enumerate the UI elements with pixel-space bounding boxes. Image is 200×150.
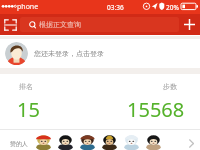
- button[interactable]: Add: [179, 14, 200, 35]
- staticText: 15: [17, 96, 40, 123]
- staticText: 步数: [163, 82, 177, 91]
- staticText: 您还未登录，点击登录: [34, 49, 104, 58]
- button[interactable]: Scan: [0, 14, 20, 35]
- staticText: 03:36: [107, 3, 124, 12]
- other: More: [189, 139, 194, 148]
- staticText: 排名: [19, 82, 33, 91]
- button[interactable]: 根据正文查询: [20, 17, 179, 32]
- staticText: phone: [17, 2, 39, 12]
- staticText: 赞的人: [10, 140, 28, 148]
- staticText: 根据正文查询: [39, 20, 81, 29]
- button[interactable]: 赞的人: [0, 130, 200, 150]
- staticText: 20%: [166, 3, 179, 12]
- button[interactable]: 您还未登录，点击登录: [0, 39, 200, 68]
- staticText: 15568: [127, 96, 185, 123]
